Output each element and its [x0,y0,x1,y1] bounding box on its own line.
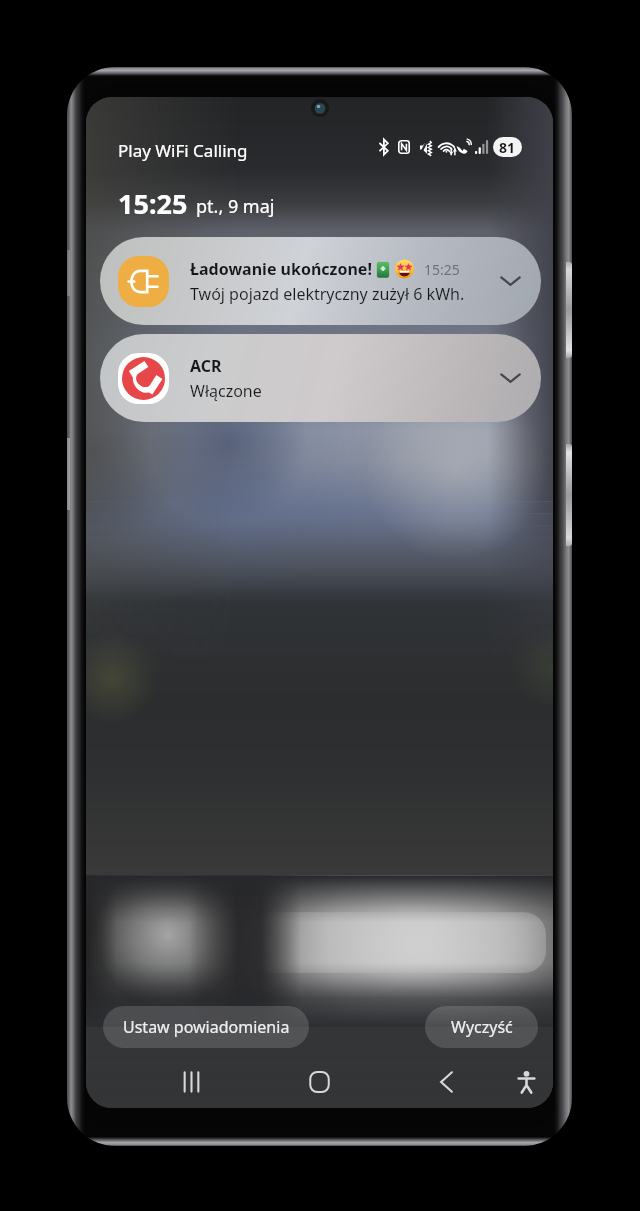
staticText: 81 [499,138,516,157]
staticText: Play WiFi Calling [118,139,248,162]
staticText: Twój pojazd elektryczny zużył 6 kWh. [190,283,465,305]
button[interactable]: Wyczyść [425,1006,538,1048]
button[interactable]: Expand notification [492,360,528,396]
staticText: Wyczyść [451,1016,513,1038]
staticText: Włączone [190,380,262,402]
staticText: Ładowanie ukończone! [190,258,372,280]
staticText: 15:25 [118,185,188,222]
button[interactable]: ACR [100,334,541,422]
button[interactable]: Expand notification [492,263,528,299]
button[interactable]: Ustaw powiadomienia [103,1006,309,1048]
button[interactable]: Accessibility [498,1055,553,1108]
button[interactable]: Recents [163,1055,219,1108]
staticText: Ustaw powiadomienia [123,1016,290,1038]
staticText: pt., 9 maj [196,194,275,219]
button[interactable]: Back [418,1055,474,1108]
staticText: 15:25 [424,260,460,279]
staticText: ACR [190,355,222,377]
button[interactable]: Ładowanie ukończone! [100,237,541,325]
button[interactable]: Home [291,1055,347,1108]
